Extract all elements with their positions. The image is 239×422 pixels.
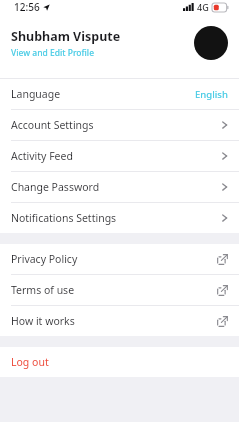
button[interactable]: Language [0, 79, 239, 109]
staticText: English [195, 88, 228, 101]
staticText: How it works [11, 314, 75, 328]
staticText: Activity Feed [11, 149, 73, 163]
button[interactable]: Profile photo [194, 26, 228, 60]
staticText: Terms of use [11, 283, 75, 297]
button[interactable]: Account Settings [0, 110, 239, 140]
staticText: 12:56 [14, 0, 40, 14]
button[interactable]: Shubham Vispute [11, 28, 194, 59]
staticText: Account Settings [11, 118, 94, 132]
button[interactable]: Change Password [0, 172, 239, 202]
staticText: Privacy Policy [11, 252, 78, 266]
button[interactable]: Activity Feed [0, 141, 239, 171]
staticText: View and Edit Profile [11, 47, 95, 59]
staticText: Log out [11, 355, 49, 369]
button[interactable]: Privacy Policy [0, 244, 239, 274]
staticText: Shubham Vispute [11, 28, 121, 45]
button[interactable]: How it works [0, 306, 239, 336]
button[interactable]: Log out [0, 347, 239, 377]
staticText: 4G [197, 1, 209, 13]
staticText: Change Password [11, 180, 100, 194]
staticText: Notifications Settings [11, 211, 117, 225]
staticText: Language [11, 87, 61, 101]
button[interactable]: Notifications Settings [0, 203, 239, 233]
button[interactable]: Terms of use [0, 275, 239, 305]
